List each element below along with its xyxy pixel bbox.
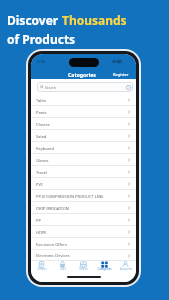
staticText: Gloves <box>36 158 49 163</box>
button[interactable]: Excursion Offers <box>31 238 136 250</box>
staticText: Stores <box>79 267 88 271</box>
staticText: Discover <box>7 12 62 28</box>
button[interactable]: HDPE <box>31 226 136 238</box>
staticText: Orders <box>37 267 47 271</box>
button[interactable]: Cart <box>52 261 73 276</box>
button[interactable]: Travel <box>31 166 136 178</box>
button[interactable]: Gloves <box>31 154 136 166</box>
staticText: Cart <box>60 267 66 271</box>
other: Filter <box>126 85 131 90</box>
button[interactable]: Cheese <box>31 118 136 130</box>
staticText: Excursion Offers <box>36 242 67 247</box>
button[interactable]: Keyboard <box>31 142 136 154</box>
button[interactable]: Stores <box>73 261 94 276</box>
button[interactable]: Electronic Devices <box>31 250 136 261</box>
staticText: Electronic Devices <box>36 253 70 258</box>
button[interactable]: Search <box>37 82 133 92</box>
button[interactable]: Pants <box>31 106 136 118</box>
button[interactable]: Orders <box>31 261 52 276</box>
staticText: Travel <box>36 170 48 175</box>
staticText: PP-B COMPRESSION PRODUCT LINE <box>36 194 104 199</box>
button[interactable]: PVC <box>31 178 136 190</box>
staticText: DRIP IRRIGATION <box>36 206 69 211</box>
staticText: HDPE <box>36 230 47 235</box>
staticText: 9:36 <box>37 59 45 64</box>
button[interactable]: Register <box>112 71 130 78</box>
staticText: Categories <box>97 267 112 271</box>
button[interactable]: Salad <box>31 130 136 142</box>
staticText: PP <box>36 218 41 223</box>
staticText: Cheese <box>36 122 50 127</box>
staticText: Table <box>36 98 46 103</box>
staticText: Accounts <box>120 267 132 271</box>
button[interactable]: Table <box>31 94 136 106</box>
staticText: Search <box>45 85 56 90</box>
staticText: of Products <box>7 31 76 47</box>
staticText: PVC <box>36 182 44 187</box>
staticText: Categories <box>68 71 96 78</box>
button[interactable]: PP <box>31 214 136 226</box>
button[interactable]: Accounts <box>115 261 136 276</box>
staticText: Register <box>113 72 129 77</box>
button[interactable]: Categories <box>94 261 115 276</box>
staticText: Keyboard <box>36 146 54 151</box>
staticText: Thousands <box>62 12 127 28</box>
button[interactable]: DRIP IRRIGATION <box>31 202 136 214</box>
staticText: Pants <box>36 110 47 115</box>
staticText: Salad <box>36 134 47 139</box>
button[interactable]: PP-B COMPRESSION PRODUCT LINE <box>31 190 136 202</box>
